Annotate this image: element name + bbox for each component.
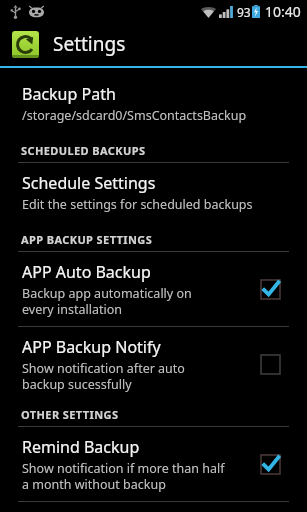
staticText: Edit the settings for scheduled backups xyxy=(22,196,253,213)
staticText: 10:40 xyxy=(265,2,301,21)
staticText: Remind Backup xyxy=(22,436,140,458)
staticText: APP Backup Notify xyxy=(22,336,161,358)
staticText: Show notification if more than half a mo… xyxy=(22,460,225,492)
button[interactable]: APP Auto Backup xyxy=(0,252,307,326)
staticText: APP BACKUP SETTINGS xyxy=(21,232,153,247)
staticText: Backup Path xyxy=(22,83,116,105)
staticText: Schedule Settings xyxy=(22,172,156,194)
staticText: Show notification after auto backup suce… xyxy=(22,360,185,392)
button[interactable]: Schedule Settings xyxy=(0,163,307,222)
staticText: Backup app automatically on every instal… xyxy=(22,285,192,317)
staticText: SCHEDULED BACKUPS xyxy=(21,143,146,158)
button[interactable]: Settings xyxy=(0,22,307,66)
staticText: APP Auto Backup xyxy=(22,261,151,283)
button[interactable]: Checked xyxy=(259,278,281,300)
staticText: /storage/sdcard0/SmsContactsBackup xyxy=(22,107,247,124)
button[interactable]: Checked xyxy=(259,453,281,475)
button[interactable]: Unchecked xyxy=(259,353,281,375)
staticText: Settings xyxy=(53,31,126,57)
staticText: 93 xyxy=(237,4,251,20)
button[interactable]: APP Backup Notify xyxy=(0,327,307,401)
button[interactable]: Remind Backup xyxy=(0,427,307,501)
button[interactable]: Backup Path xyxy=(0,74,307,133)
staticText: OTHER SETTINGS xyxy=(21,407,119,422)
